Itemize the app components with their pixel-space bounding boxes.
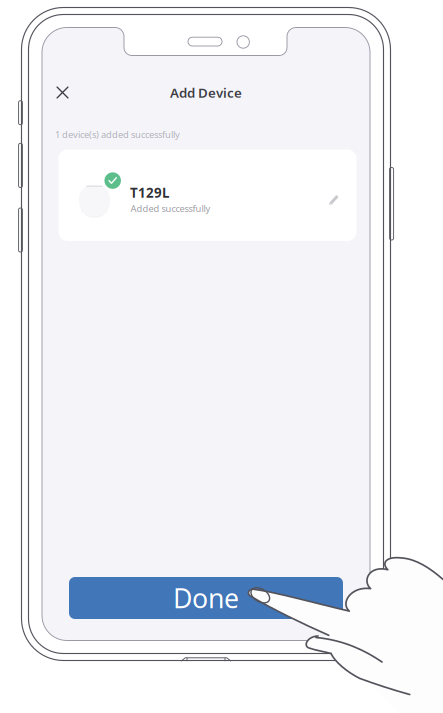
button[interactable]: Rename device [321, 186, 347, 212]
staticText: Done [173, 580, 239, 616]
staticText: 1 device(s) added successfully [55, 128, 180, 141]
button[interactable]: Done [0, 0, 443, 713]
staticText: Add Device [170, 84, 242, 101]
staticText: Added successfully [130, 202, 210, 215]
button[interactable]: Close [48, 78, 76, 106]
staticText: T129L [130, 184, 169, 201]
